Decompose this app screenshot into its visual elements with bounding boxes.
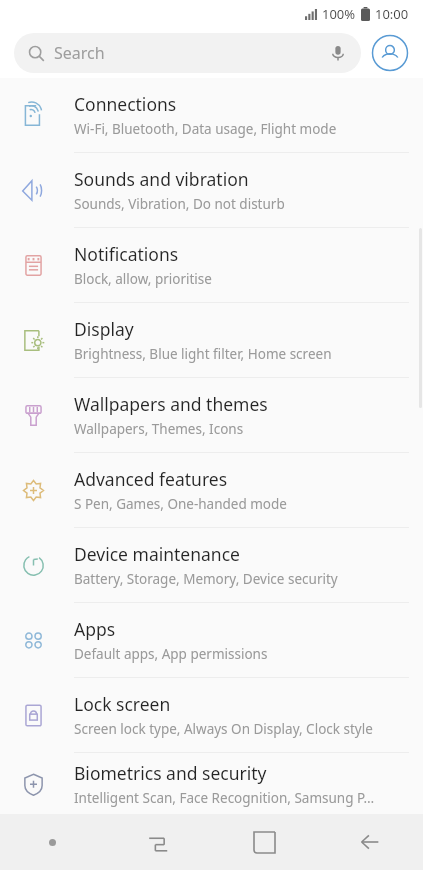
staticText: Wallpapers, Themes, Icons	[74, 420, 244, 438]
button[interactable]: Sounds and vibration	[0, 153, 423, 227]
staticText: Notifications	[74, 242, 179, 266]
button[interactable]: Biometrics and security	[0, 753, 423, 814]
staticText: Intelligent Scan, Face Recognition, Sams…	[74, 789, 375, 807]
staticText: Connections	[74, 92, 177, 116]
button[interactable]: Wallpapers and themes	[0, 378, 423, 452]
staticText: Block, allow, prioritise	[74, 270, 212, 288]
staticText: 10:00	[375, 5, 409, 23]
staticText: 100%	[322, 5, 356, 23]
staticText: Display	[74, 317, 134, 341]
staticText: Wi-Fi, Bluetooth, Data usage, Flight mod…	[74, 120, 337, 138]
staticText: Lock screen	[74, 692, 171, 716]
button[interactable]: Display	[0, 303, 423, 377]
button[interactable]: Samsung account	[371, 34, 409, 72]
button[interactable]: Connections	[0, 78, 423, 152]
button[interactable]: Lock screen	[0, 678, 423, 752]
staticText: Screen lock type, Always On Display, Clo…	[74, 720, 373, 738]
button[interactable]: Show button background	[0, 814, 105, 870]
button[interactable]: Device maintenance	[0, 528, 423, 602]
button[interactable]: Advanced features	[0, 453, 423, 527]
button[interactable]: Search	[14, 33, 361, 73]
staticText: Sounds and vibration	[74, 167, 249, 191]
staticText: Brightness, Blue light filter, Home scre…	[74, 345, 332, 363]
staticText: Search	[54, 42, 105, 64]
button[interactable]: Voice search	[327, 42, 349, 64]
button[interactable]: Back	[317, 814, 423, 870]
button[interactable]: Home	[211, 814, 317, 870]
staticText: Advanced features	[74, 467, 228, 491]
staticText: Sounds, Vibration, Do not disturb	[74, 195, 285, 213]
staticText: Apps	[74, 617, 116, 641]
button[interactable]: Notifications	[0, 228, 423, 302]
staticText: Battery, Storage, Memory, Device securit…	[74, 570, 338, 588]
button[interactable]: Apps	[0, 603, 423, 677]
staticText: S Pen, Games, One-handed mode	[74, 495, 287, 513]
staticText: Default apps, App permissions	[74, 645, 268, 663]
staticText: Wallpapers and themes	[74, 392, 268, 416]
button[interactable]: Recents	[105, 814, 211, 870]
staticText: Biometrics and security	[74, 761, 267, 785]
staticText: Device maintenance	[74, 542, 240, 566]
